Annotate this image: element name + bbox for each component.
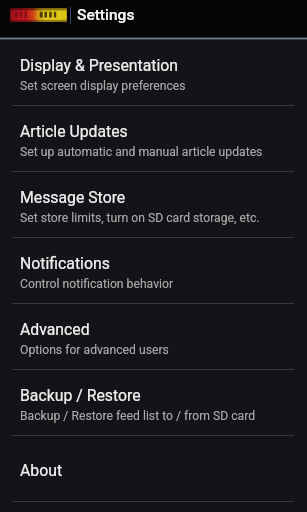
staticText: Set up automatic and manual article upda… <box>20 145 263 159</box>
button[interactable]: Notifications <box>0 238 307 304</box>
staticText: Backup / Restore feed list to / from SD … <box>20 409 256 423</box>
staticText: Message Store <box>20 188 126 207</box>
staticText: Settings <box>77 6 135 24</box>
staticText: Set screen display preferences <box>20 79 186 93</box>
staticText: Notifications <box>20 254 110 273</box>
staticText: Set store limits, turn on SD card storag… <box>20 211 260 225</box>
staticText: Display & Presentation <box>20 56 178 75</box>
staticText: Control notification behavior <box>20 277 174 291</box>
staticText: About <box>20 461 63 480</box>
button[interactable]: Article Updates <box>0 106 307 172</box>
button[interactable]: Display & Presentation <box>0 40 307 106</box>
staticText: Article Updates <box>20 122 128 141</box>
button[interactable]: Settings <box>9 0 307 30</box>
button[interactable]: Message Store <box>0 172 307 238</box>
button[interactable]: Advanced <box>0 304 307 370</box>
staticText: Advanced <box>20 320 90 339</box>
staticText: Options for advanced users <box>20 343 169 357</box>
button[interactable]: Backup / Restore <box>0 370 307 436</box>
staticText: Backup / Restore <box>20 386 141 405</box>
button[interactable]: About <box>0 436 307 502</box>
